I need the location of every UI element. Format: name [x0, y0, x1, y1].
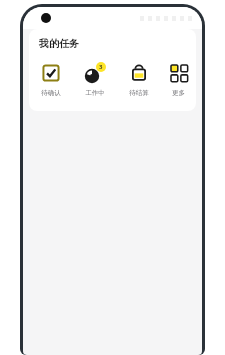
staticText: 待确认: [41, 89, 61, 97]
staticText: 工作中: [85, 89, 105, 97]
button[interactable]: 更多: [161, 60, 196, 99]
button[interactable]: 待结算: [117, 60, 161, 99]
button[interactable]: 待确认: [29, 60, 73, 99]
staticText: 待结算: [129, 89, 149, 97]
staticText: 3: [99, 63, 103, 71]
staticText: 更多: [172, 89, 185, 97]
button[interactable]: 3: [73, 60, 117, 99]
staticText: 我的任务: [39, 37, 79, 50]
